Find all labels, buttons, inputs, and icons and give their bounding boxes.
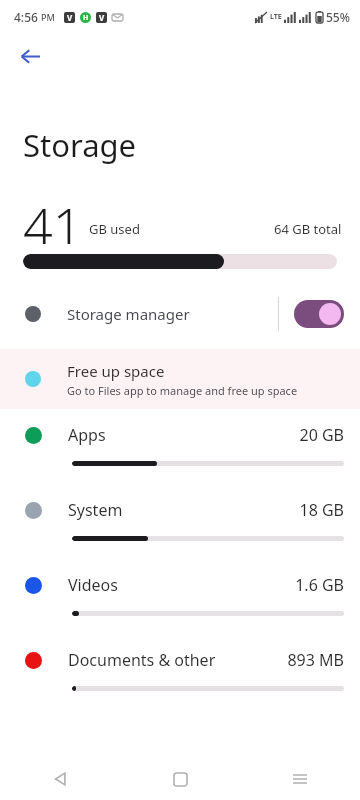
button[interactable]: Recent apps	[240, 758, 360, 800]
staticText: Videos	[68, 574, 295, 596]
button[interactable]: Back	[10, 36, 50, 76]
button[interactable]: Home	[120, 758, 240, 800]
staticText: 64 GB total	[274, 220, 342, 238]
staticText: Free up space	[67, 361, 165, 381]
staticText: V	[99, 12, 105, 23]
button[interactable]: Free up space	[0, 349, 360, 409]
staticText: Storage	[23, 124, 137, 166]
staticText: Apps	[68, 424, 299, 446]
staticText: H	[83, 13, 89, 23]
staticText: 1.6 GB	[295, 574, 344, 596]
staticText: PM	[41, 11, 55, 23]
button[interactable]: Videos	[0, 559, 360, 634]
button[interactable]: Storage manager	[0, 287, 360, 341]
staticText: 41	[23, 190, 83, 244]
staticText: 55%	[326, 9, 350, 25]
staticText: 4:56	[14, 9, 38, 25]
staticText: Go to Files app to manage and free up sp…	[67, 383, 298, 398]
button[interactable]: Back	[0, 758, 120, 800]
staticText: Documents & other	[68, 649, 287, 671]
button[interactable]: Storage manager toggle	[294, 300, 344, 328]
button[interactable]: Apps	[0, 409, 360, 484]
staticText: Storage manager	[67, 304, 278, 324]
staticText: System	[68, 499, 299, 521]
staticText: V	[67, 12, 73, 23]
staticText: LTE	[270, 12, 282, 22]
staticText: 20 GB	[299, 424, 344, 446]
staticText: 18 GB	[299, 499, 344, 521]
staticText: 893 MB	[287, 649, 344, 671]
button[interactable]: Documents & other	[0, 634, 360, 709]
staticText: GB used	[89, 220, 140, 238]
button[interactable]: System	[0, 484, 360, 559]
